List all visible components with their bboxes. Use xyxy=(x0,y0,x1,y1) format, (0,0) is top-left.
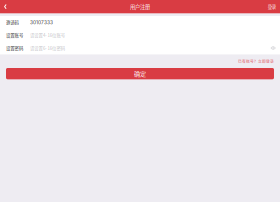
staticText: 30107333 xyxy=(30,19,53,25)
staticText: 请设置6-16位密码 xyxy=(30,45,65,51)
button[interactable]: Show password xyxy=(271,46,276,50)
staticText: 已有账号？立即登录 xyxy=(238,58,274,64)
staticText: 设置密码 xyxy=(6,45,23,51)
button[interactable]: 确定 xyxy=(6,68,274,79)
staticText: 邀请码 xyxy=(6,19,19,26)
staticText: 设置账号 xyxy=(6,32,23,38)
staticText: 请设置4-16位账号 xyxy=(30,32,65,38)
button[interactable]: 已有账号？立即登录 xyxy=(238,54,280,68)
button[interactable]: 登录 xyxy=(268,0,280,13)
staticText: 登录 xyxy=(268,3,276,10)
button[interactable]: Back xyxy=(0,0,11,13)
staticText: 用户注册 xyxy=(130,3,150,10)
staticText: 确定 xyxy=(134,69,146,78)
